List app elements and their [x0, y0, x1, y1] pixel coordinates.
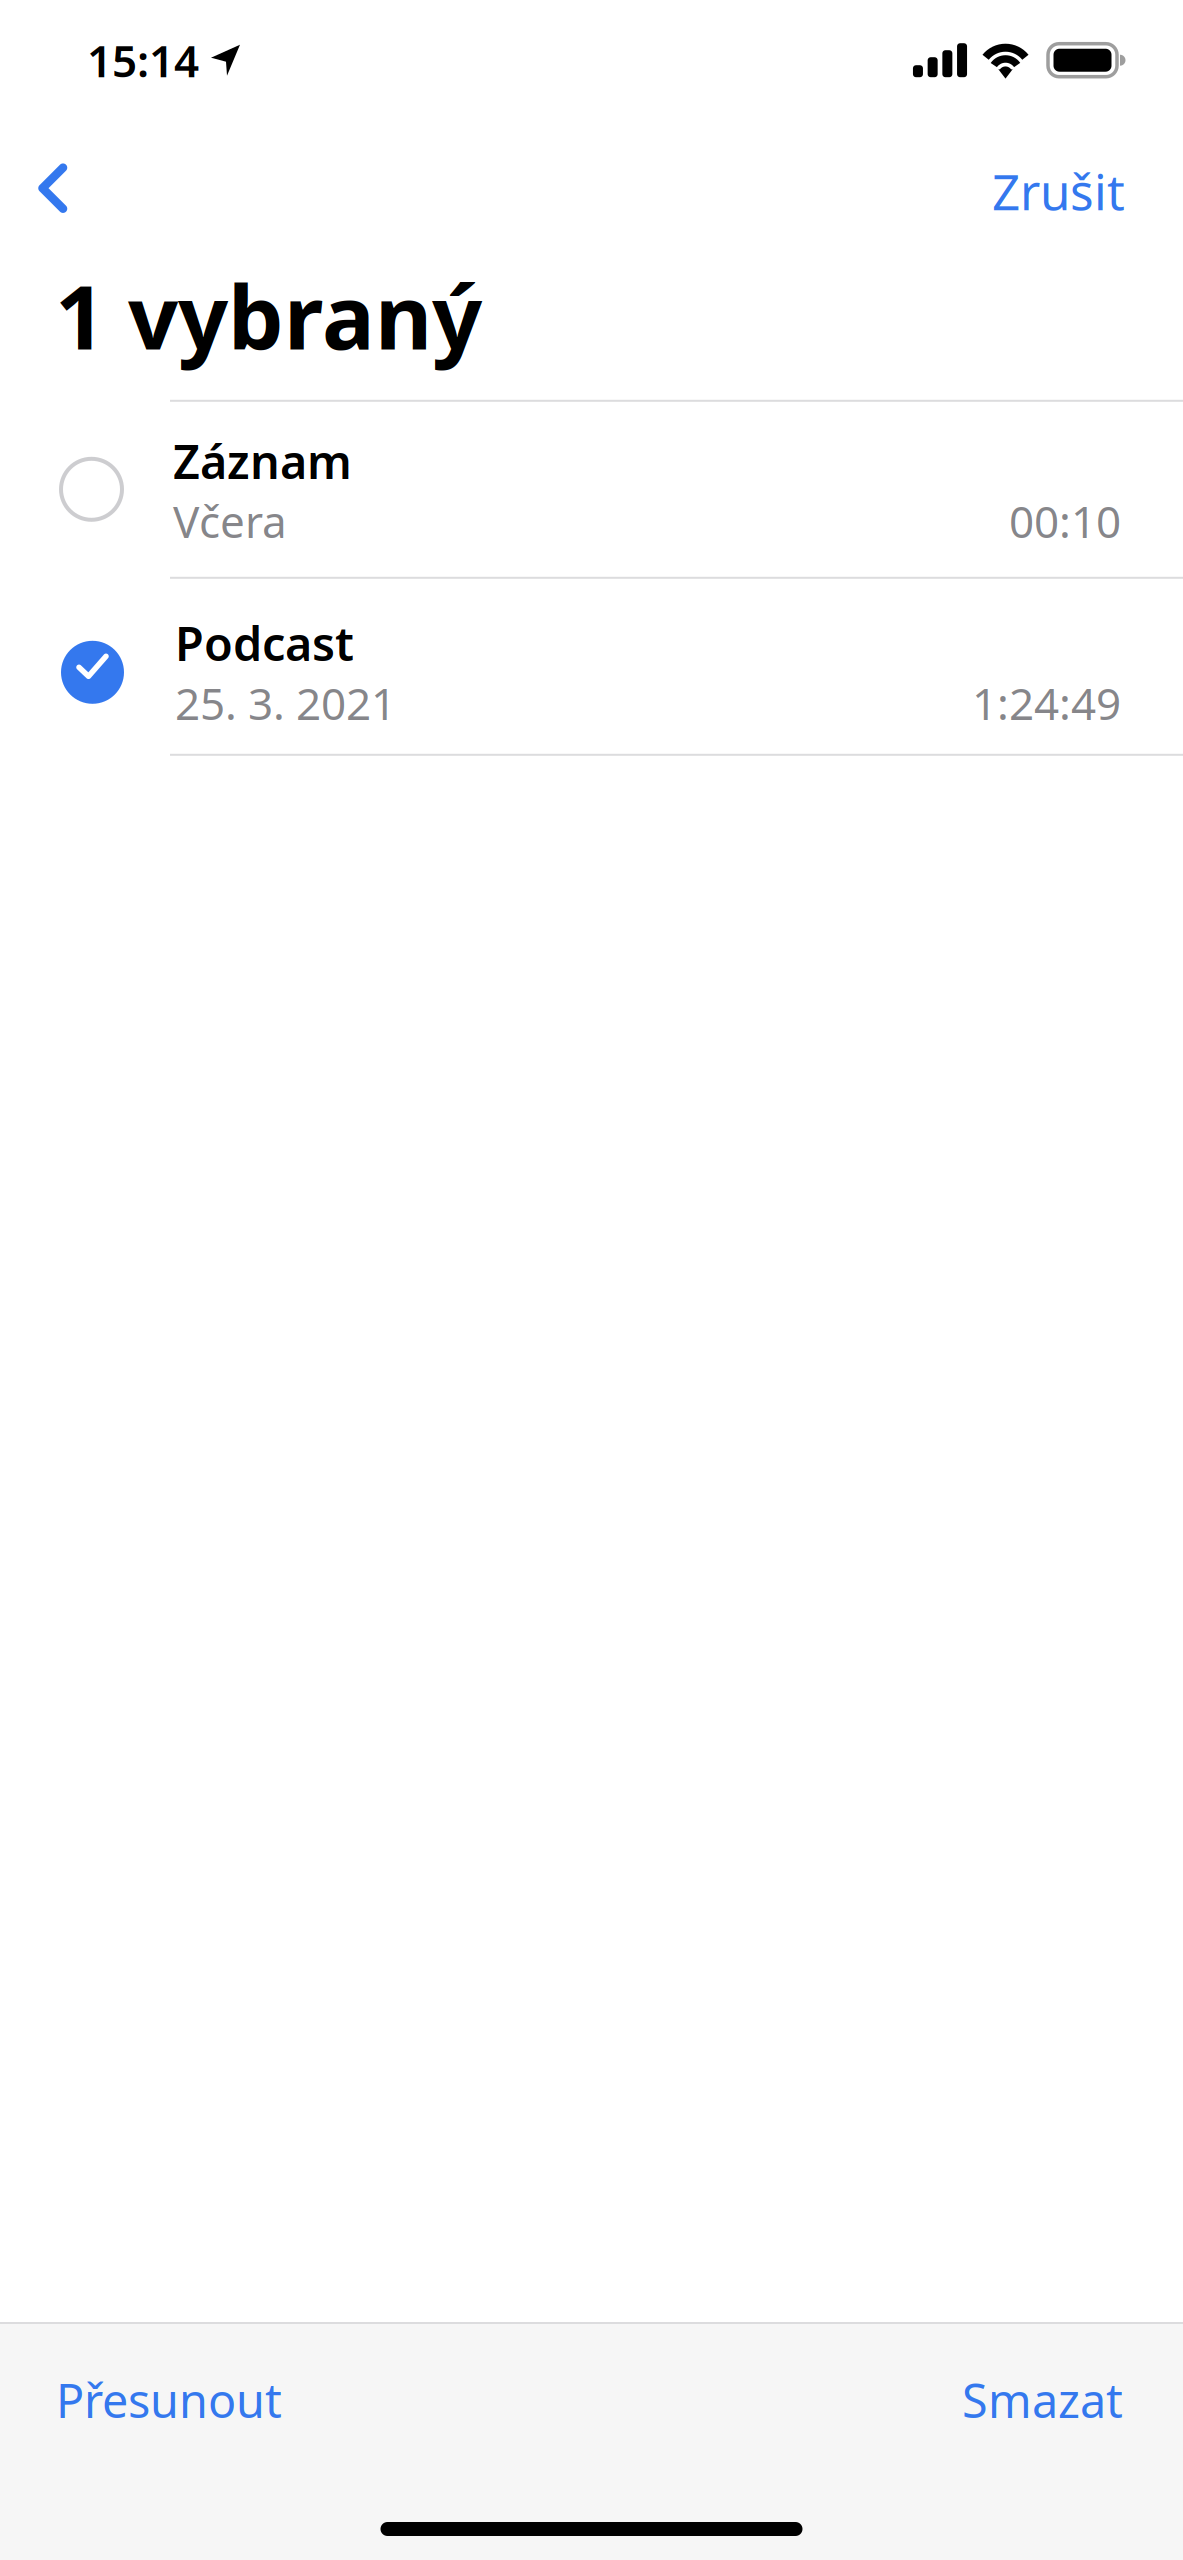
staticText: Záznam — [173, 430, 352, 492]
staticText: 15:14 — [87, 31, 199, 89]
staticText: Zrušit — [992, 158, 1125, 224]
staticText: 1:24:49 — [972, 674, 1121, 732]
staticText: 1 vybraný — [55, 257, 482, 374]
button[interactable]: Back — [0, 157, 101, 225]
staticText: 00:10 — [1009, 492, 1121, 550]
staticText: Smazat — [962, 2369, 1123, 2431]
staticText: Podcast — [175, 612, 354, 674]
button[interactable]: Přesunout — [0, 2339, 322, 2461]
staticText: 25. 3. 2021 — [175, 674, 396, 732]
staticText: Včera — [173, 492, 287, 550]
button[interactable]: Smazat — [922, 2339, 1183, 2461]
button[interactable]: Zrušit — [958, 145, 1183, 237]
staticText: Přesunout — [56, 2369, 282, 2431]
button[interactable]: Záznam — [0, 402, 1183, 577]
button[interactable]: Podcast — [0, 579, 1183, 754]
